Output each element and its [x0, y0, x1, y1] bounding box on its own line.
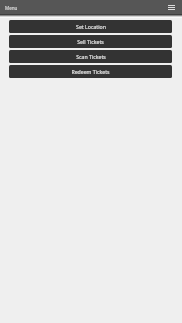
button[interactable]: Sell Tickets	[9, 35, 172, 48]
staticText: Scan Tickets	[76, 53, 106, 60]
button[interactable]: Open navigation menu	[166, 1, 177, 13]
staticText: Set Location	[76, 23, 106, 30]
button[interactable]: Set Location	[9, 20, 172, 33]
button[interactable]: Redeem Tickets	[9, 65, 172, 78]
staticText: Redeem Tickets	[71, 68, 110, 75]
staticText: Sell Tickets	[77, 38, 104, 45]
button[interactable]: Scan Tickets	[9, 50, 172, 63]
staticText: Menu	[5, 5, 18, 11]
